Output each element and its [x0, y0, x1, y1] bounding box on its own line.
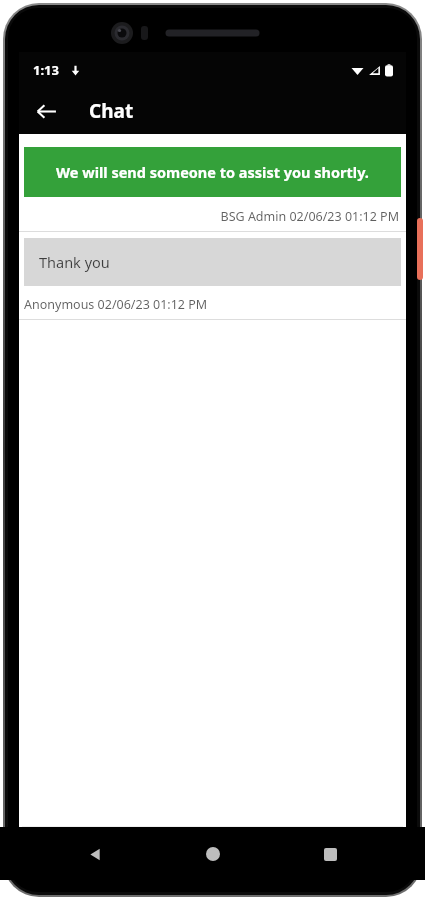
button[interactable]: Message input — [22, 826, 403, 876]
button[interactable]: Back — [72, 831, 118, 877]
staticText: Chat — [89, 98, 134, 124]
staticText: Anonymous 02/06/23 01:12 PM — [24, 296, 406, 313]
button[interactable]: Back — [25, 90, 67, 132]
button[interactable]: Recent apps — [307, 831, 353, 877]
button[interactable]: Home — [190, 831, 236, 877]
staticText: Thank you — [39, 252, 110, 272]
button[interactable]: We will send someone to assist you short… — [24, 147, 401, 197]
staticText: BSG Admin 02/06/23 01:12 PM — [19, 208, 399, 225]
button[interactable]: Thank you — [24, 238, 401, 286]
staticText: 1:13 — [33, 61, 59, 79]
staticText: We will send someone to assist you short… — [56, 162, 369, 182]
